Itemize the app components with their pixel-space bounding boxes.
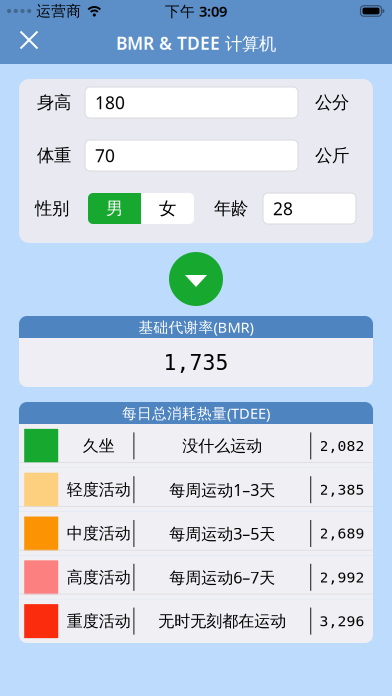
staticText: 身高 — [37, 92, 71, 113]
staticText: 2,082 — [320, 438, 365, 454]
staticText: 高度活动 — [67, 567, 131, 587]
staticText: 无时无刻都在运动 — [158, 611, 286, 631]
button[interactable]: 男 — [88, 193, 141, 224]
staticText: 女 — [159, 198, 176, 219]
staticText: 每周运动1–3天 — [169, 479, 275, 500]
staticText: 性别 — [35, 198, 69, 219]
staticText: 180 — [95, 91, 125, 114]
button[interactable]: 计算 — [169, 252, 223, 306]
button[interactable]: 70 — [85, 140, 298, 171]
button[interactable]: 180 — [85, 87, 298, 118]
staticText: 每周运动6–7天 — [169, 567, 275, 588]
button[interactable]: Close — [0, 22, 37, 64]
staticText: 久坐 — [83, 436, 115, 456]
staticText: 公分 — [315, 92, 349, 113]
staticText: BMR & TDEE 计算机 — [116, 31, 276, 54]
staticText: 28 — [273, 197, 293, 220]
staticText: 男 — [106, 198, 123, 219]
staticText: 中度活动 — [67, 524, 131, 543]
button[interactable]: 28 — [263, 193, 356, 224]
staticText: 3,296 — [320, 613, 365, 629]
staticText: 基础代谢率(BMR) — [138, 317, 253, 337]
staticText: 70 — [95, 144, 115, 167]
staticText: 公斤 — [315, 145, 349, 166]
staticText: 2,385 — [320, 481, 365, 498]
staticText: 年龄 — [214, 198, 248, 219]
staticText: 1,735 — [163, 350, 228, 375]
staticText: 下午 3:09 — [165, 1, 227, 21]
staticText: 每日总消耗热量(TDEE) — [122, 403, 270, 423]
staticText: 重度活动 — [67, 611, 131, 631]
staticText: 运营商 — [36, 2, 81, 20]
button[interactable]: 女 — [141, 193, 194, 224]
staticText: 轻度活动 — [67, 480, 131, 500]
staticText: 2,689 — [320, 525, 365, 542]
staticText: 2,992 — [320, 569, 365, 586]
staticText: 每周运动3–5天 — [169, 523, 275, 544]
staticText: 体重 — [37, 145, 71, 166]
staticText: 没什么运动 — [182, 436, 262, 456]
